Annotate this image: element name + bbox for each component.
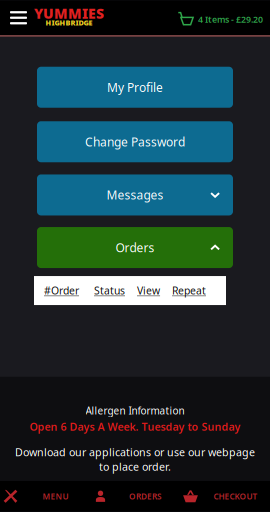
staticText: YUMMIES	[34, 4, 104, 23]
staticText: Download our applications or use our web…	[15, 445, 255, 459]
button[interactable]: 4 Items - £29.20	[177, 0, 270, 35]
staticText: Change Password	[85, 134, 185, 150]
staticText: to place order.	[99, 459, 171, 474]
button[interactable]: MENU	[0, 481, 90, 512]
staticText: Open 6 Days A Week. Tuesday to Sunday	[29, 419, 240, 434]
button[interactable]: Change Password	[37, 121, 233, 162]
staticText: Status	[94, 283, 125, 298]
staticText: Messages	[106, 187, 163, 203]
button[interactable]: Status	[89, 276, 130, 305]
staticText: #Order	[44, 283, 79, 298]
button[interactable]: Menu	[0, 0, 33, 35]
staticText: 4 Items - £29.20	[198, 13, 263, 25]
staticText: Orders	[115, 239, 154, 256]
staticText: My Profile	[107, 79, 163, 95]
staticText: CHECKOUT	[213, 491, 257, 502]
staticText: View	[137, 283, 160, 298]
staticText: ORDERS	[129, 491, 162, 502]
button[interactable]: My Profile	[37, 67, 233, 108]
button[interactable]: View	[130, 276, 167, 305]
staticText: HIGHBRIDGE	[45, 18, 92, 28]
staticText: MENU	[42, 491, 68, 502]
button[interactable]: Messages	[37, 174, 233, 215]
button[interactable]: CHECKOUT	[180, 481, 270, 512]
button[interactable]: Repeat	[167, 276, 211, 305]
button[interactable]: ORDERS	[90, 481, 180, 512]
button[interactable]: Orders	[37, 227, 233, 268]
button[interactable]: #Order	[34, 276, 89, 305]
button[interactable]: Yummies Highbridge home	[33, 0, 105, 35]
staticText: Repeat	[172, 283, 206, 298]
staticText: Allergen Information	[85, 404, 184, 417]
